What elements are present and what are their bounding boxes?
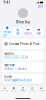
staticText: Keypad [29,90,35,92]
button[interactable]: message [2,26,12,37]
button[interactable]: home [2,73,43,83]
button[interactable]: Edit [38,5,43,8]
staticText: Contacts [20,90,26,92]
staticText: mobile [4,52,14,55]
staticText: FaceTime [4,63,15,67]
staticText: Video • Audio [4,67,27,71]
button[interactable]: mobile [2,51,43,60]
button[interactable]: mail [34,27,43,36]
staticText: call [16,32,20,35]
button[interactable]: FaceTime [2,62,43,72]
staticText: Blue Ivy [16,19,30,24]
staticText: 9:41 [3,1,10,4]
button[interactable]: Voicemail [37,87,46,92]
button[interactable]: Recents [9,87,18,92]
staticText: message [3,30,11,37]
button[interactable]: Contact Photo & Poster [2,38,43,49]
button[interactable]: video [24,27,33,36]
button[interactable]: Keypad [28,87,37,92]
button[interactable]: Favorites [0,87,9,92]
staticText: Recents [11,90,17,92]
staticText: (555) 555-1234 [4,56,28,59]
staticText: blueivy@icloud.com [4,78,31,82]
staticText: home [4,75,12,78]
button[interactable]: call [13,27,22,36]
staticText: video [24,32,32,35]
button[interactable]: Contacts [18,87,28,92]
staticText: Edit [38,5,43,8]
staticText: Voicemail [38,90,44,92]
staticText: Favorites [1,90,8,92]
staticText: Contact Photo & Poster [9,42,41,46]
staticText: mail [36,32,41,35]
